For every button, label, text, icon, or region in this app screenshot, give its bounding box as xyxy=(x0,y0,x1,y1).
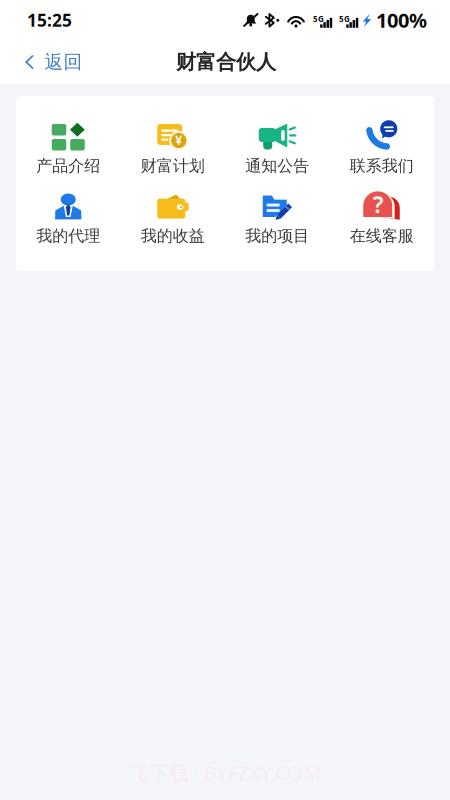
button[interactable]: ? xyxy=(329,193,434,244)
staticText: 5G xyxy=(313,13,324,24)
staticText: ¥ xyxy=(175,132,182,148)
button[interactable]: 联系我们 xyxy=(329,123,434,174)
staticText: 5G xyxy=(339,13,350,24)
staticText: 我的收益 xyxy=(141,226,205,246)
staticText: 我的项目 xyxy=(245,226,309,246)
staticText: 财富合伙人 xyxy=(176,50,276,74)
button[interactable]: ¥ xyxy=(120,123,225,174)
button[interactable]: 我的收益 xyxy=(120,193,225,244)
button[interactable]: 我的项目 xyxy=(225,193,329,244)
button[interactable]: 通知公告 xyxy=(225,123,329,174)
staticText: 产品介绍 xyxy=(36,156,100,176)
staticText: 100% xyxy=(376,7,427,33)
staticText: 在线客服 xyxy=(350,226,414,246)
staticText: 15:25 xyxy=(27,8,72,31)
button[interactable]: 我的代理 xyxy=(16,193,120,244)
staticText: 联系我们 xyxy=(350,156,414,176)
staticText: ? xyxy=(373,189,384,219)
staticText: 返回 xyxy=(44,50,82,73)
staticText: 通知公告 xyxy=(245,156,309,176)
staticText: 财富计划 xyxy=(141,156,205,176)
button[interactable]: 返回 xyxy=(16,43,91,80)
button[interactable]: 产品介绍 xyxy=(16,123,120,174)
staticText: 飞下载 · BYFZXY.COM xyxy=(129,759,321,786)
staticText: 我的代理 xyxy=(36,226,100,246)
